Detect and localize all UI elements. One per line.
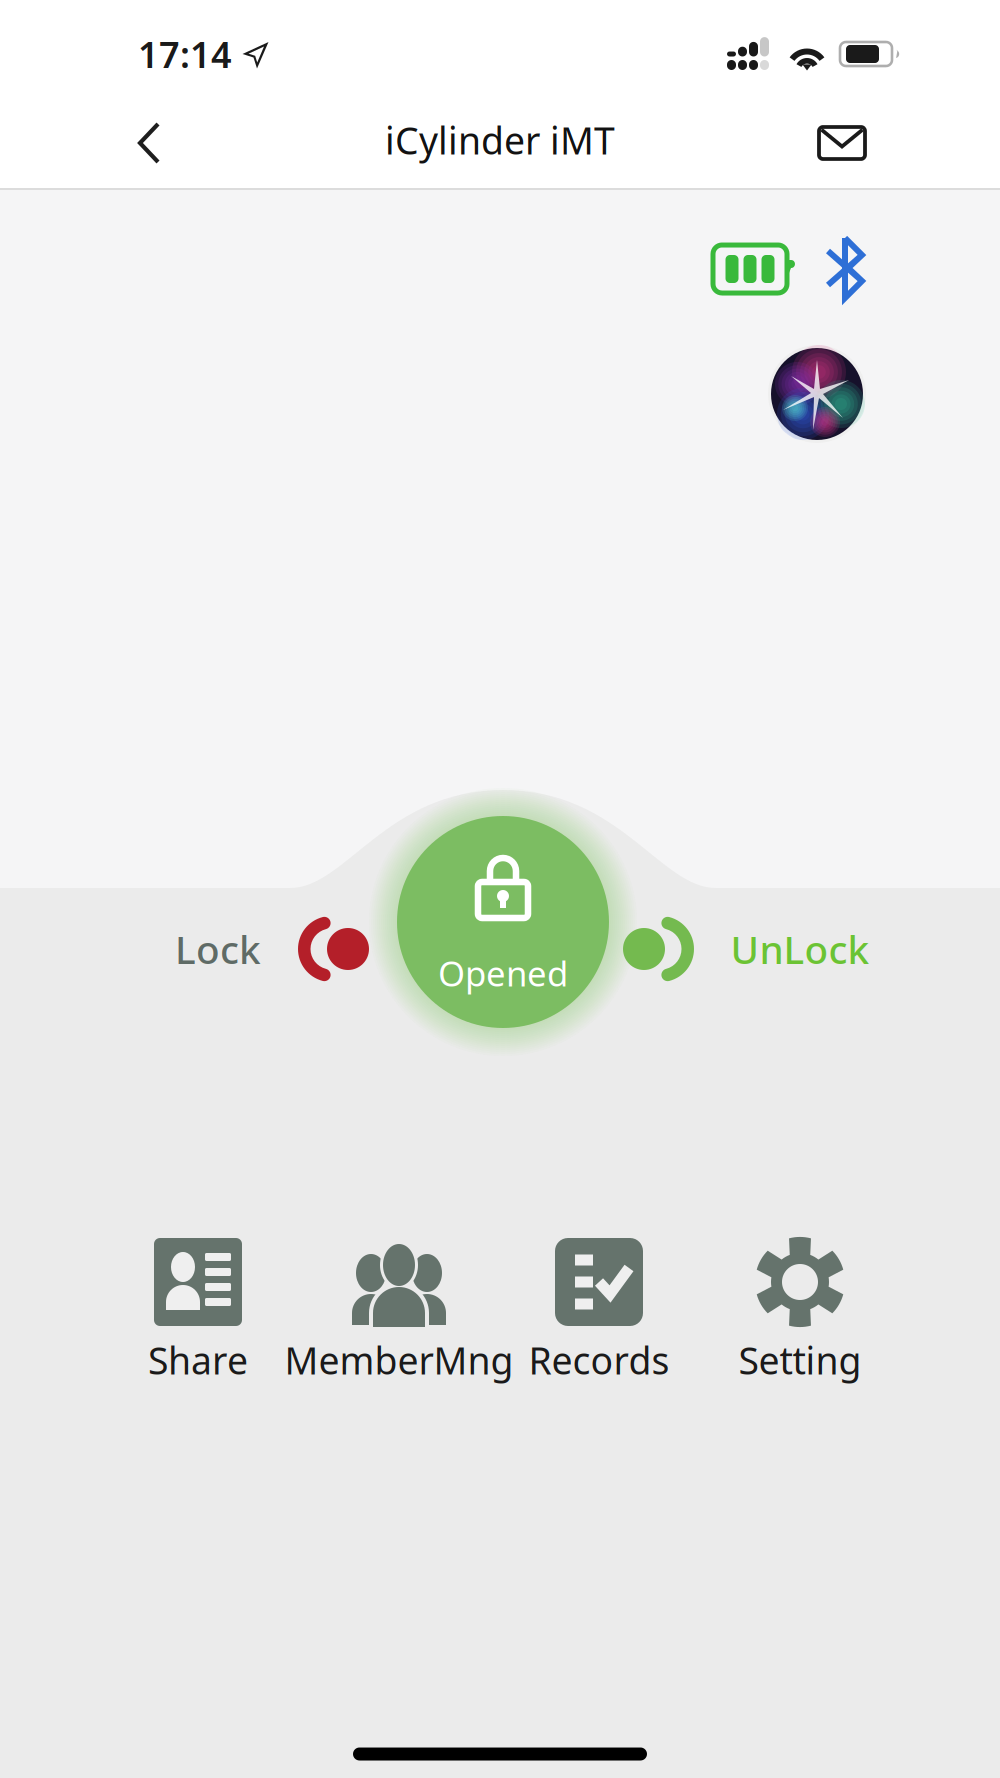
staticText: Records xyxy=(528,1335,669,1385)
staticText: 17:14 xyxy=(138,30,232,78)
button[interactable]: Setting xyxy=(700,1252,900,1408)
button[interactable]: Back xyxy=(104,96,194,190)
staticText: Share xyxy=(148,1335,248,1385)
button[interactable]: Records xyxy=(499,1252,699,1408)
button[interactable]: UnLock xyxy=(638,894,858,1004)
staticText: iCylinder iMT xyxy=(385,115,615,165)
staticText: Lock xyxy=(175,923,261,975)
button[interactable]: MemberMng xyxy=(279,1252,519,1408)
button[interactable]: Opened xyxy=(367,786,639,1058)
staticText: UnLock xyxy=(730,923,869,975)
staticText: MemberMng xyxy=(284,1335,513,1385)
button[interactable]: Share xyxy=(98,1252,298,1408)
button[interactable]: Siri xyxy=(767,344,867,444)
button[interactable]: Messages xyxy=(796,96,888,190)
button[interactable]: Lock xyxy=(146,894,346,1004)
staticText: Opened xyxy=(438,950,568,996)
staticText: Setting xyxy=(738,1335,861,1385)
